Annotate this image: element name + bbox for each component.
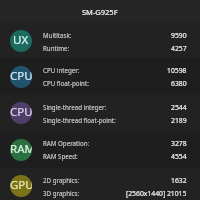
staticText: 2544 — [171, 103, 187, 112]
staticText: 4257 — [171, 44, 187, 53]
staticText: CPU integer: — [43, 66, 80, 74]
staticText: RAM — [10, 141, 32, 157]
staticText: [2560x1440] 21015 — [126, 189, 187, 198]
staticText: 9590 — [171, 31, 187, 40]
staticText: Single-thread float-point: — [43, 116, 116, 124]
staticText: GPU — [10, 177, 32, 193]
staticText: Runtime: — [43, 44, 70, 52]
staticText: CPU — [10, 68, 32, 84]
staticText: Multitask: — [43, 31, 72, 39]
staticText: 2D graphics: — [43, 176, 80, 184]
staticText: 2189 — [171, 116, 187, 125]
staticText: UX — [13, 32, 29, 48]
button[interactable]: UX — [0, 23, 200, 58]
staticText: 10598 — [167, 66, 187, 75]
button[interactable]: GPU — [0, 168, 200, 200]
staticText: RAM Operation: — [43, 139, 90, 147]
button[interactable]: CPU — [0, 58, 200, 95]
staticText: 6380 — [171, 79, 187, 88]
staticText: 1632 — [171, 176, 187, 185]
staticText: 3278 — [171, 139, 187, 148]
staticText: Single-thread integer: — [43, 103, 107, 111]
button[interactable]: RAM — [0, 131, 200, 168]
button[interactable]: CPU — [0, 95, 200, 131]
staticText: 3D graphics: — [43, 189, 80, 197]
staticText: RAM Speed: — [43, 152, 78, 160]
staticText: 4554 — [171, 152, 187, 161]
staticText: CPU — [10, 104, 32, 120]
staticText: SM-G925F — [82, 7, 118, 17]
staticText: CPU float-point: — [43, 79, 89, 87]
